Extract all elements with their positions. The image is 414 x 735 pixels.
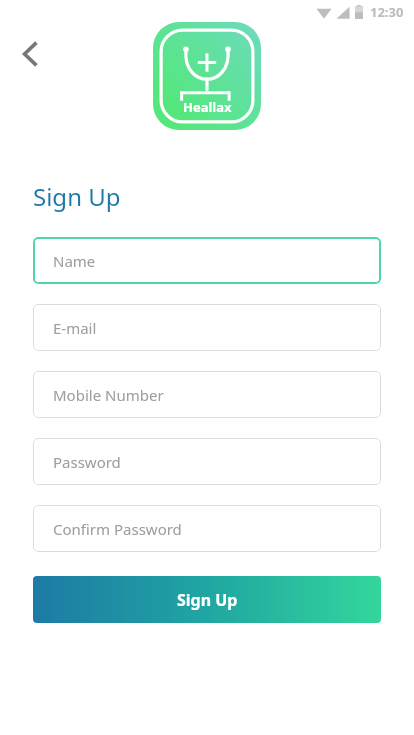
staticText: Name xyxy=(53,251,96,271)
staticText: Sign Up xyxy=(177,589,238,611)
staticText: E-mail xyxy=(53,318,97,338)
staticText: Sign Up xyxy=(33,180,121,213)
button[interactable]: Confirm Password xyxy=(33,505,381,552)
button[interactable]: Sign Up xyxy=(33,576,381,623)
staticText: Heallax xyxy=(183,98,232,116)
button[interactable]: Name xyxy=(33,237,381,284)
button[interactable]: Password xyxy=(33,438,381,485)
staticText: Confirm Password xyxy=(53,519,182,539)
button[interactable]: Back xyxy=(10,34,50,74)
staticText: Mobile Number xyxy=(53,385,164,405)
staticText: 12:30 xyxy=(370,3,404,21)
staticText: Password xyxy=(53,452,121,472)
button[interactable]: Mobile Number xyxy=(33,371,381,418)
button[interactable]: E-mail xyxy=(33,304,381,351)
